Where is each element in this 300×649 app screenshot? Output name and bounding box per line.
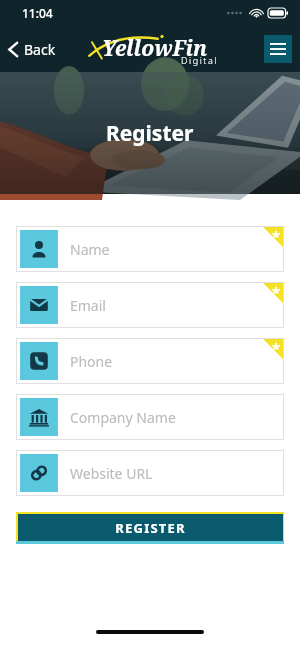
staticText: Website URL (70, 464, 153, 483)
button[interactable]: Phone (16, 338, 284, 384)
staticText: YellowFin (102, 34, 208, 63)
staticText: Digital (181, 54, 219, 66)
staticText: Company Name (70, 408, 176, 427)
button[interactable]: Website URL (16, 450, 284, 496)
staticText: * (272, 338, 281, 358)
button[interactable]: REGISTER (18, 514, 283, 541)
staticText: Register (106, 119, 194, 148)
staticText: 11:04 (22, 5, 53, 21)
staticText: Email (70, 296, 106, 315)
button[interactable]: Company Name (16, 394, 284, 440)
staticText: Name (70, 240, 110, 259)
staticText: * (272, 226, 281, 246)
staticText: * (272, 282, 281, 302)
staticText: Back (24, 40, 56, 59)
button[interactable]: Email (16, 282, 284, 328)
button[interactable]: Name (16, 226, 284, 272)
button[interactable]: Back (0, 34, 66, 65)
staticText: REGISTER (115, 519, 186, 537)
staticText: Phone (70, 352, 113, 371)
button[interactable]: Menu (264, 35, 292, 63)
